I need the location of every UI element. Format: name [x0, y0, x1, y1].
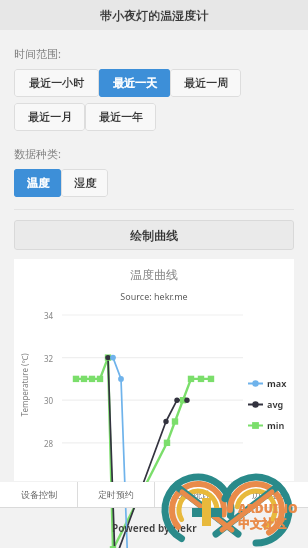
button[interactable]: 最近一年	[85, 103, 156, 131]
staticText: 历史记录	[252, 489, 288, 500]
staticText: Source: hekr.me	[14, 290, 294, 302]
button[interactable]: 设备控制	[0, 482, 77, 507]
staticText: ARDUINO	[238, 500, 298, 516]
staticText: 最近一周	[184, 76, 228, 90]
staticText: 定时预约	[98, 489, 134, 500]
staticText: avg	[267, 398, 284, 410]
staticText: 最近一年	[99, 110, 143, 124]
staticText: 最近一天	[113, 76, 157, 90]
button[interactable]: 历史记录	[232, 482, 308, 507]
staticText: 温度	[27, 176, 49, 190]
staticText: 时间范围:	[14, 46, 61, 61]
staticText: 最近一小时	[29, 76, 84, 90]
staticText: 带小夜灯的温湿度计	[100, 8, 208, 23]
staticText: 34	[44, 310, 54, 321]
button[interactable]: 湿度	[61, 169, 108, 197]
staticText: min	[267, 419, 285, 431]
button[interactable]: 最近一小时	[14, 69, 99, 97]
staticText: Temperature (℃)	[18, 352, 29, 416]
button[interactable]: 数据统计	[155, 482, 231, 507]
staticText: 最近一月	[28, 110, 72, 124]
staticText: Powered by Hekr	[112, 521, 197, 535]
staticText: 温度曲线	[14, 267, 294, 282]
button[interactable]: 最近一周	[170, 69, 241, 97]
staticText: 30	[44, 395, 54, 406]
button[interactable]: 温度	[14, 169, 61, 197]
button[interactable]: 最近一天	[99, 69, 170, 97]
staticText: 湿度	[74, 176, 96, 190]
button[interactable]: 最近一月	[14, 103, 85, 131]
staticText: 设备控制	[21, 489, 57, 500]
staticText: 32	[44, 353, 54, 364]
staticText: 28	[44, 438, 54, 449]
staticText: 绘制曲线	[130, 228, 178, 243]
button[interactable]: 定时预约	[78, 482, 154, 507]
staticText: 数据统计	[175, 489, 211, 500]
button[interactable]: 绘制曲线	[14, 220, 294, 250]
staticText: 中文社区	[238, 516, 286, 531]
staticText: max	[267, 377, 287, 389]
staticText: 数据种类:	[14, 146, 61, 161]
